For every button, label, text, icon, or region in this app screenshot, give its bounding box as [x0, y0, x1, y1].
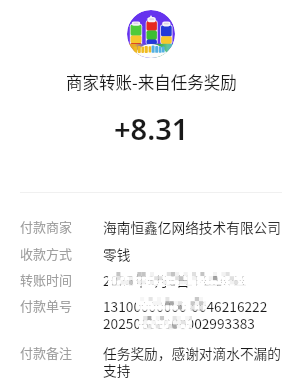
staticText: 付款商家	[20, 217, 103, 236]
staticText: 收款方式	[20, 244, 103, 263]
button[interactable]	[127, 10, 175, 58]
staticText: 2025年6月6日 14:24:44	[103, 270, 246, 290]
staticText: +8.31	[114, 109, 189, 148]
staticText: 零钱	[103, 244, 131, 264]
staticText: 任务奖励，感谢对滴水不漏的支持	[103, 343, 282, 380]
staticText: 付款单号	[20, 296, 103, 315]
staticText: 商家转账-来自任务奖励	[66, 70, 237, 94]
staticText: 付款备注	[20, 343, 103, 362]
staticText: 转账时间	[20, 270, 103, 289]
staticText: 海南恒鑫亿网络技术有限公司	[103, 217, 281, 237]
staticText: 13100000000-0046216222 20250608000002993…	[103, 296, 268, 333]
